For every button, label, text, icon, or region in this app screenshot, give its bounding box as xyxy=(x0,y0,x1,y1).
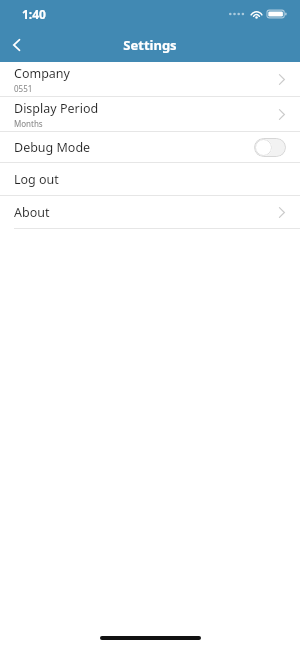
staticText: Debug Mode xyxy=(14,139,254,156)
button[interactable]: Debug Mode xyxy=(0,132,300,162)
button[interactable]: Log out xyxy=(0,163,300,195)
button[interactable]: About xyxy=(0,196,300,228)
button[interactable]: Back xyxy=(0,28,34,62)
staticText: Display Period xyxy=(14,100,99,117)
staticText: 0551 xyxy=(14,83,33,94)
staticText: Log out xyxy=(14,171,59,188)
staticText: About xyxy=(14,204,50,221)
staticText: Settings xyxy=(123,36,177,54)
staticText: Months xyxy=(14,118,43,129)
button[interactable]: Debug Mode toggle xyxy=(254,138,286,157)
staticText: Company xyxy=(14,65,70,82)
button[interactable]: Company xyxy=(0,62,300,96)
staticText: 1:40 xyxy=(22,6,46,22)
button[interactable]: Display Period xyxy=(0,97,300,131)
